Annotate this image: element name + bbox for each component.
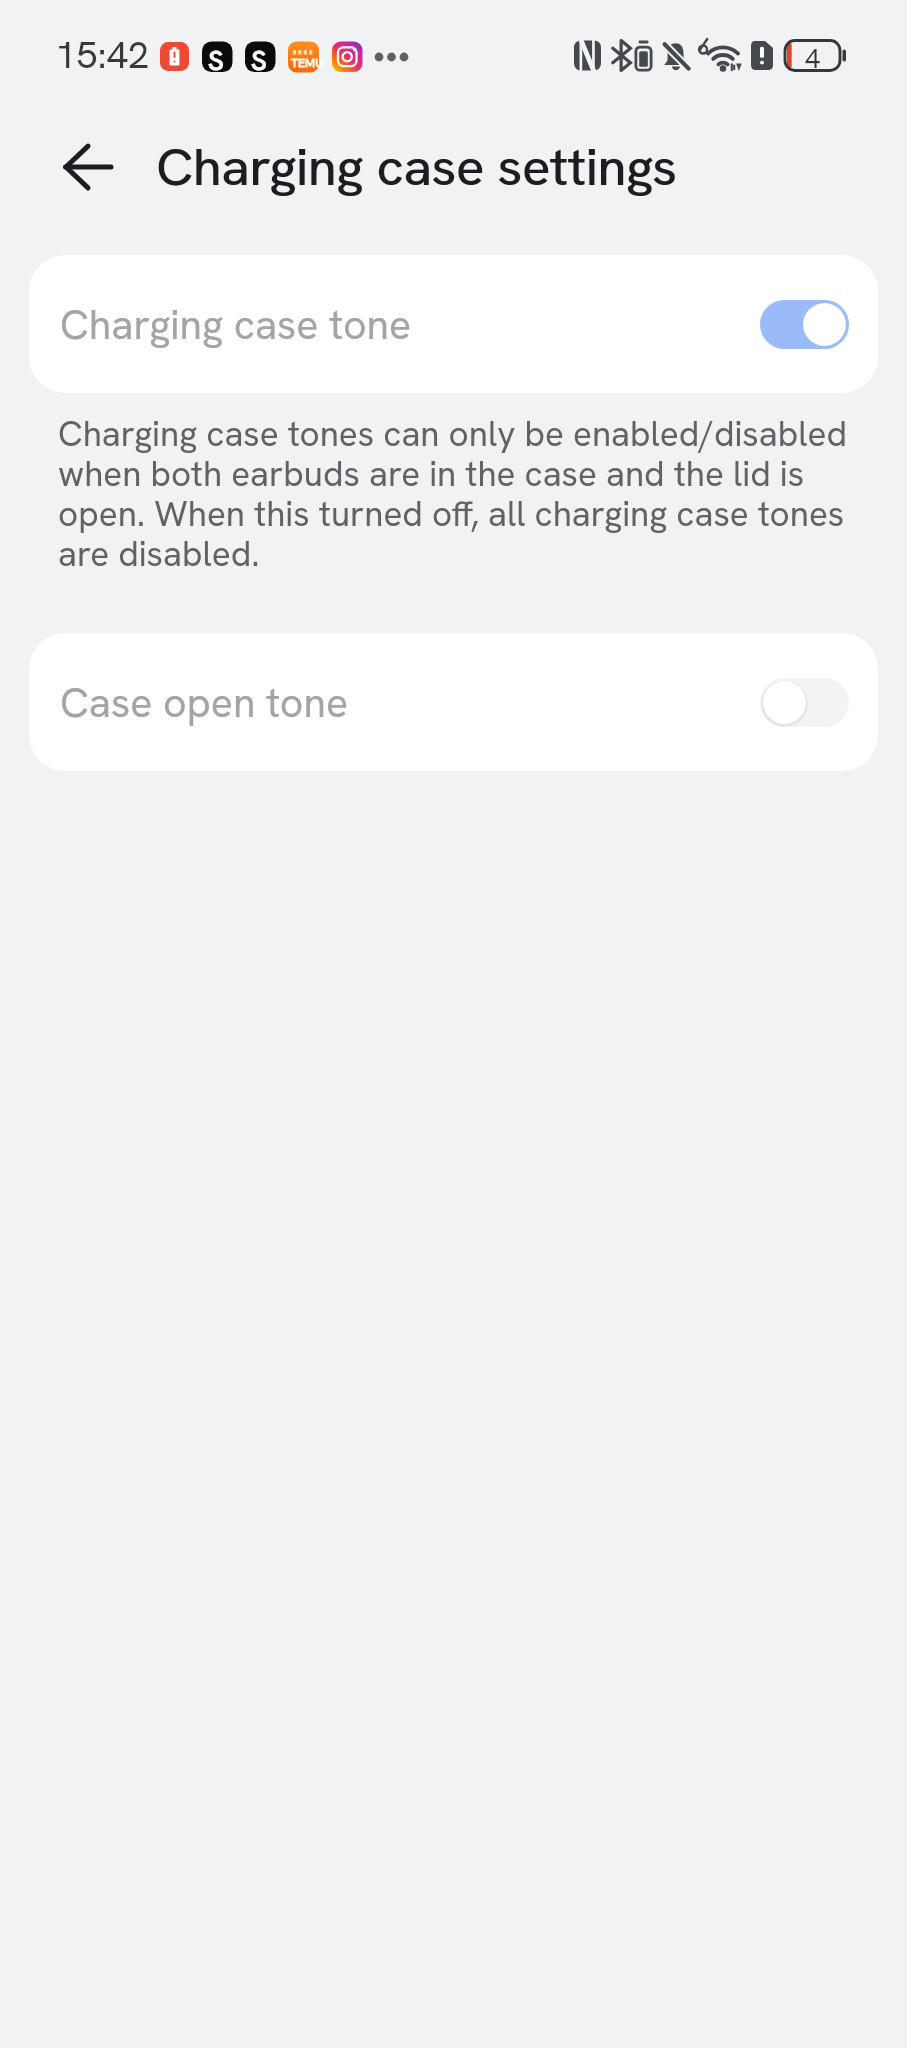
staticText: 4: [805, 41, 821, 76]
staticText: S: [208, 42, 224, 78]
button[interactable]: Back: [59, 138, 117, 196]
button[interactable]: Charging case tone: [29, 255, 878, 393]
staticText: Charging case settings: [157, 133, 678, 201]
staticText: TEMU: [291, 55, 324, 71]
button[interactable]: Case open tone, off: [760, 678, 849, 727]
button[interactable]: Charging case tone, on: [760, 300, 849, 349]
staticText: 15:42: [55, 30, 150, 80]
staticText: Charging case tone: [60, 298, 412, 351]
staticText: Charging case tones can only be enabled/…: [58, 411, 858, 576]
staticText: Charging case settings: [156, 133, 677, 201]
button[interactable]: Case open tone: [29, 633, 878, 771]
staticText: Case open tone: [60, 676, 349, 729]
staticText: S: [251, 42, 267, 78]
